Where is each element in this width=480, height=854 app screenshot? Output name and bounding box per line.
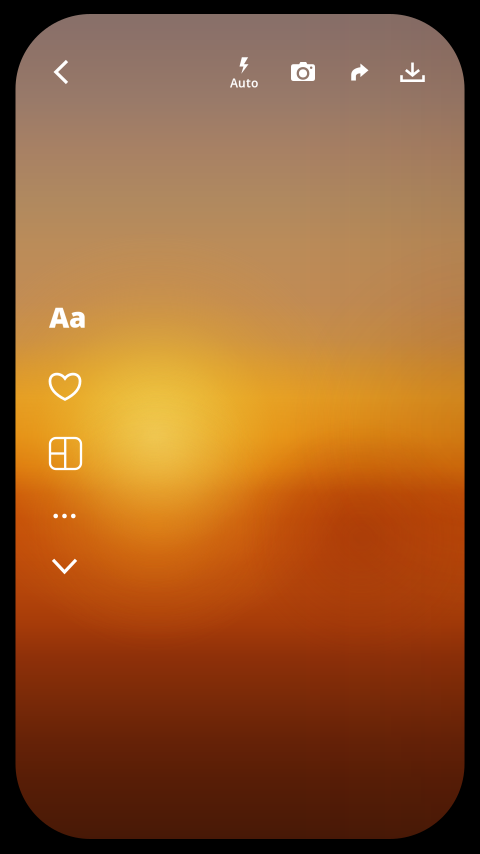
button[interactable]: Back bbox=[39, 50, 83, 94]
button[interactable]: Flash Auto bbox=[222, 52, 266, 96]
button[interactable]: Save bbox=[390, 50, 434, 94]
button[interactable]: Text bbox=[49, 295, 101, 339]
staticText: Aa bbox=[49, 298, 86, 336]
button[interactable]: Layout bbox=[50, 431, 94, 475]
button[interactable]: Favourite bbox=[49, 364, 93, 408]
button[interactable]: Collapse bbox=[53, 543, 97, 587]
button[interactable]: More bbox=[53, 494, 97, 538]
button[interactable]: Switch Camera bbox=[281, 49, 325, 93]
staticText: Auto bbox=[230, 75, 258, 91]
button[interactable]: Share bbox=[337, 50, 381, 94]
